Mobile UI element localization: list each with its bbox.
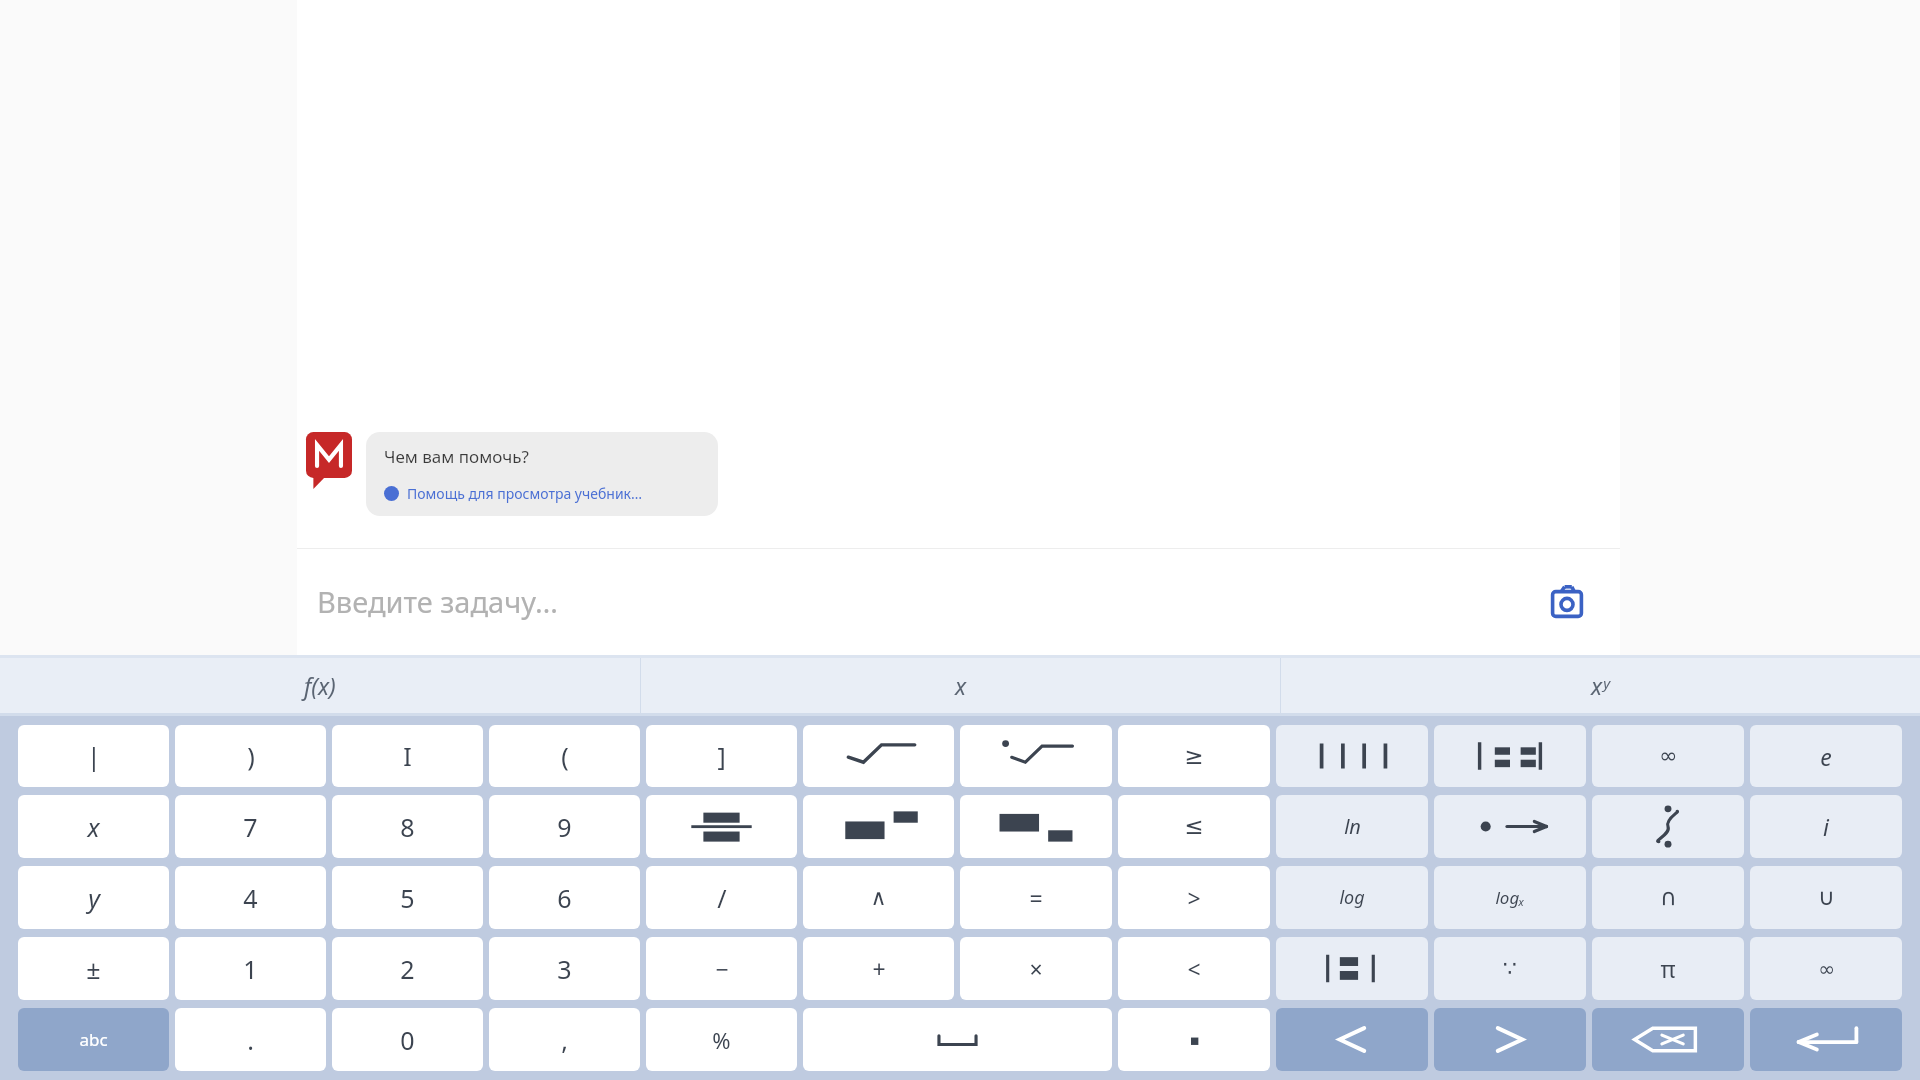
button[interactable]: ∩ <box>1592 866 1744 929</box>
staticText: π <box>1660 953 1676 984</box>
staticText: 2 <box>400 952 415 986</box>
staticText: ∞ <box>1818 957 1835 980</box>
button[interactable]: Matrix <box>1434 725 1586 787</box>
staticText: > <box>1187 882 1201 913</box>
button[interactable]: 7 <box>175 795 326 858</box>
button[interactable]: Integral <box>1592 795 1744 858</box>
button[interactable]: ∵ <box>1434 937 1586 1000</box>
button[interactable]: ln <box>1276 795 1428 858</box>
staticText: ∪ <box>1818 884 1835 911</box>
staticText: 3 <box>557 952 572 986</box>
button[interactable]: Fraction <box>646 795 797 858</box>
staticText: ≥ <box>1184 743 1204 770</box>
button[interactable]: ( <box>489 725 640 787</box>
button[interactable]: | <box>18 725 169 787</box>
button[interactable]: Implies <box>1434 795 1586 858</box>
button[interactable]: ∞ <box>1592 725 1744 787</box>
staticText: ∩ <box>1660 884 1677 911</box>
button[interactable]: % <box>646 1008 797 1071</box>
button[interactable]: Move left <box>1276 1008 1428 1071</box>
staticText: 5 <box>400 881 415 915</box>
button[interactable]: − <box>646 937 797 1000</box>
button[interactable]: x <box>641 658 1280 713</box>
button[interactable]: ∞ <box>1750 937 1902 1000</box>
button[interactable]: Enter <box>1750 1008 1902 1071</box>
button[interactable]: x <box>18 795 169 858</box>
button[interactable]: ) <box>175 725 326 787</box>
staticText: f(x) <box>304 670 336 701</box>
button[interactable]: n-th root <box>960 725 1112 787</box>
staticText: log <box>1339 885 1365 910</box>
button[interactable]: log <box>1276 866 1428 929</box>
button[interactable]: y <box>18 866 169 929</box>
button[interactable]: Power <box>803 795 954 858</box>
button[interactable]: Scan with camera <box>1540 575 1594 629</box>
staticText: ( <box>561 739 569 773</box>
button[interactable]: Чем вам помочь? <box>384 445 700 503</box>
staticText: Введите задачу… <box>317 582 558 621</box>
staticText: ± <box>86 952 101 986</box>
staticText: | <box>87 739 101 773</box>
button[interactable]: × <box>960 937 1112 1000</box>
button[interactable]: > <box>1118 866 1270 929</box>
button[interactable]: ▪ <box>1118 1008 1270 1071</box>
button[interactable]: 8 <box>332 795 483 858</box>
staticText: x <box>87 810 100 844</box>
staticText: y <box>88 881 100 915</box>
button[interactable]: ≥ <box>1118 725 1270 787</box>
staticText: 8 <box>400 810 415 844</box>
button[interactable]: Backspace <box>1592 1008 1744 1071</box>
staticText: ln <box>1344 813 1361 840</box>
button[interactable]: Введите задачу… <box>317 582 1540 621</box>
button[interactable]: 9 <box>489 795 640 858</box>
button[interactable]: I <box>332 725 483 787</box>
button[interactable]: Move right <box>1434 1008 1586 1071</box>
button[interactable]: logₓ <box>1434 866 1586 929</box>
staticText: abc <box>79 1028 108 1051</box>
staticText: ▪ <box>1189 1031 1200 1048</box>
staticText: 0 <box>400 1023 415 1057</box>
button[interactable]: ± <box>18 937 169 1000</box>
staticText: xʸ <box>1591 670 1610 701</box>
button[interactable]: , <box>489 1008 640 1071</box>
staticText: − <box>715 953 729 984</box>
button[interactable]: f(x) <box>0 658 640 713</box>
button[interactable]: i <box>1750 795 1902 858</box>
button[interactable]: Space <box>803 1008 1112 1071</box>
button[interactable]: abc <box>18 1008 169 1071</box>
staticText: = <box>1029 882 1043 913</box>
button[interactable]: Piecewise <box>1276 937 1428 1000</box>
button[interactable]: 1 <box>175 937 326 1000</box>
button[interactable]: Absolute value <box>1276 725 1428 787</box>
staticText: i <box>1823 811 1829 842</box>
button[interactable]: . <box>175 1008 326 1071</box>
button[interactable]: 5 <box>332 866 483 929</box>
staticText: 9 <box>557 810 572 844</box>
button[interactable]: ≤ <box>1118 795 1270 858</box>
button[interactable]: 4 <box>175 866 326 929</box>
button[interactable]: π <box>1592 937 1744 1000</box>
button[interactable]: 3 <box>489 937 640 1000</box>
button[interactable]: / <box>646 866 797 929</box>
staticText: e <box>1820 741 1832 772</box>
button[interactable]: ∪ <box>1750 866 1902 929</box>
button[interactable]: xʸ <box>1281 658 1920 713</box>
button[interactable]: 0 <box>332 1008 483 1071</box>
button[interactable]: e <box>1750 725 1902 787</box>
button[interactable]: 2 <box>332 937 483 1000</box>
button[interactable]: Subscript <box>960 795 1112 858</box>
staticText: 1 <box>243 952 258 986</box>
button[interactable]: ∧ <box>803 866 954 929</box>
staticText: ∵ <box>1503 956 1517 982</box>
button[interactable]: + <box>803 937 954 1000</box>
staticText: ) <box>247 739 255 773</box>
staticText: . <box>247 1023 254 1057</box>
staticText: + <box>872 953 886 984</box>
staticText: × <box>1029 953 1043 984</box>
button[interactable]: < <box>1118 937 1270 1000</box>
button[interactable]: ] <box>646 725 797 787</box>
button[interactable]: = <box>960 866 1112 929</box>
staticText: < <box>1187 953 1201 984</box>
button[interactable]: Square root <box>803 725 954 787</box>
button[interactable]: 6 <box>489 866 640 929</box>
